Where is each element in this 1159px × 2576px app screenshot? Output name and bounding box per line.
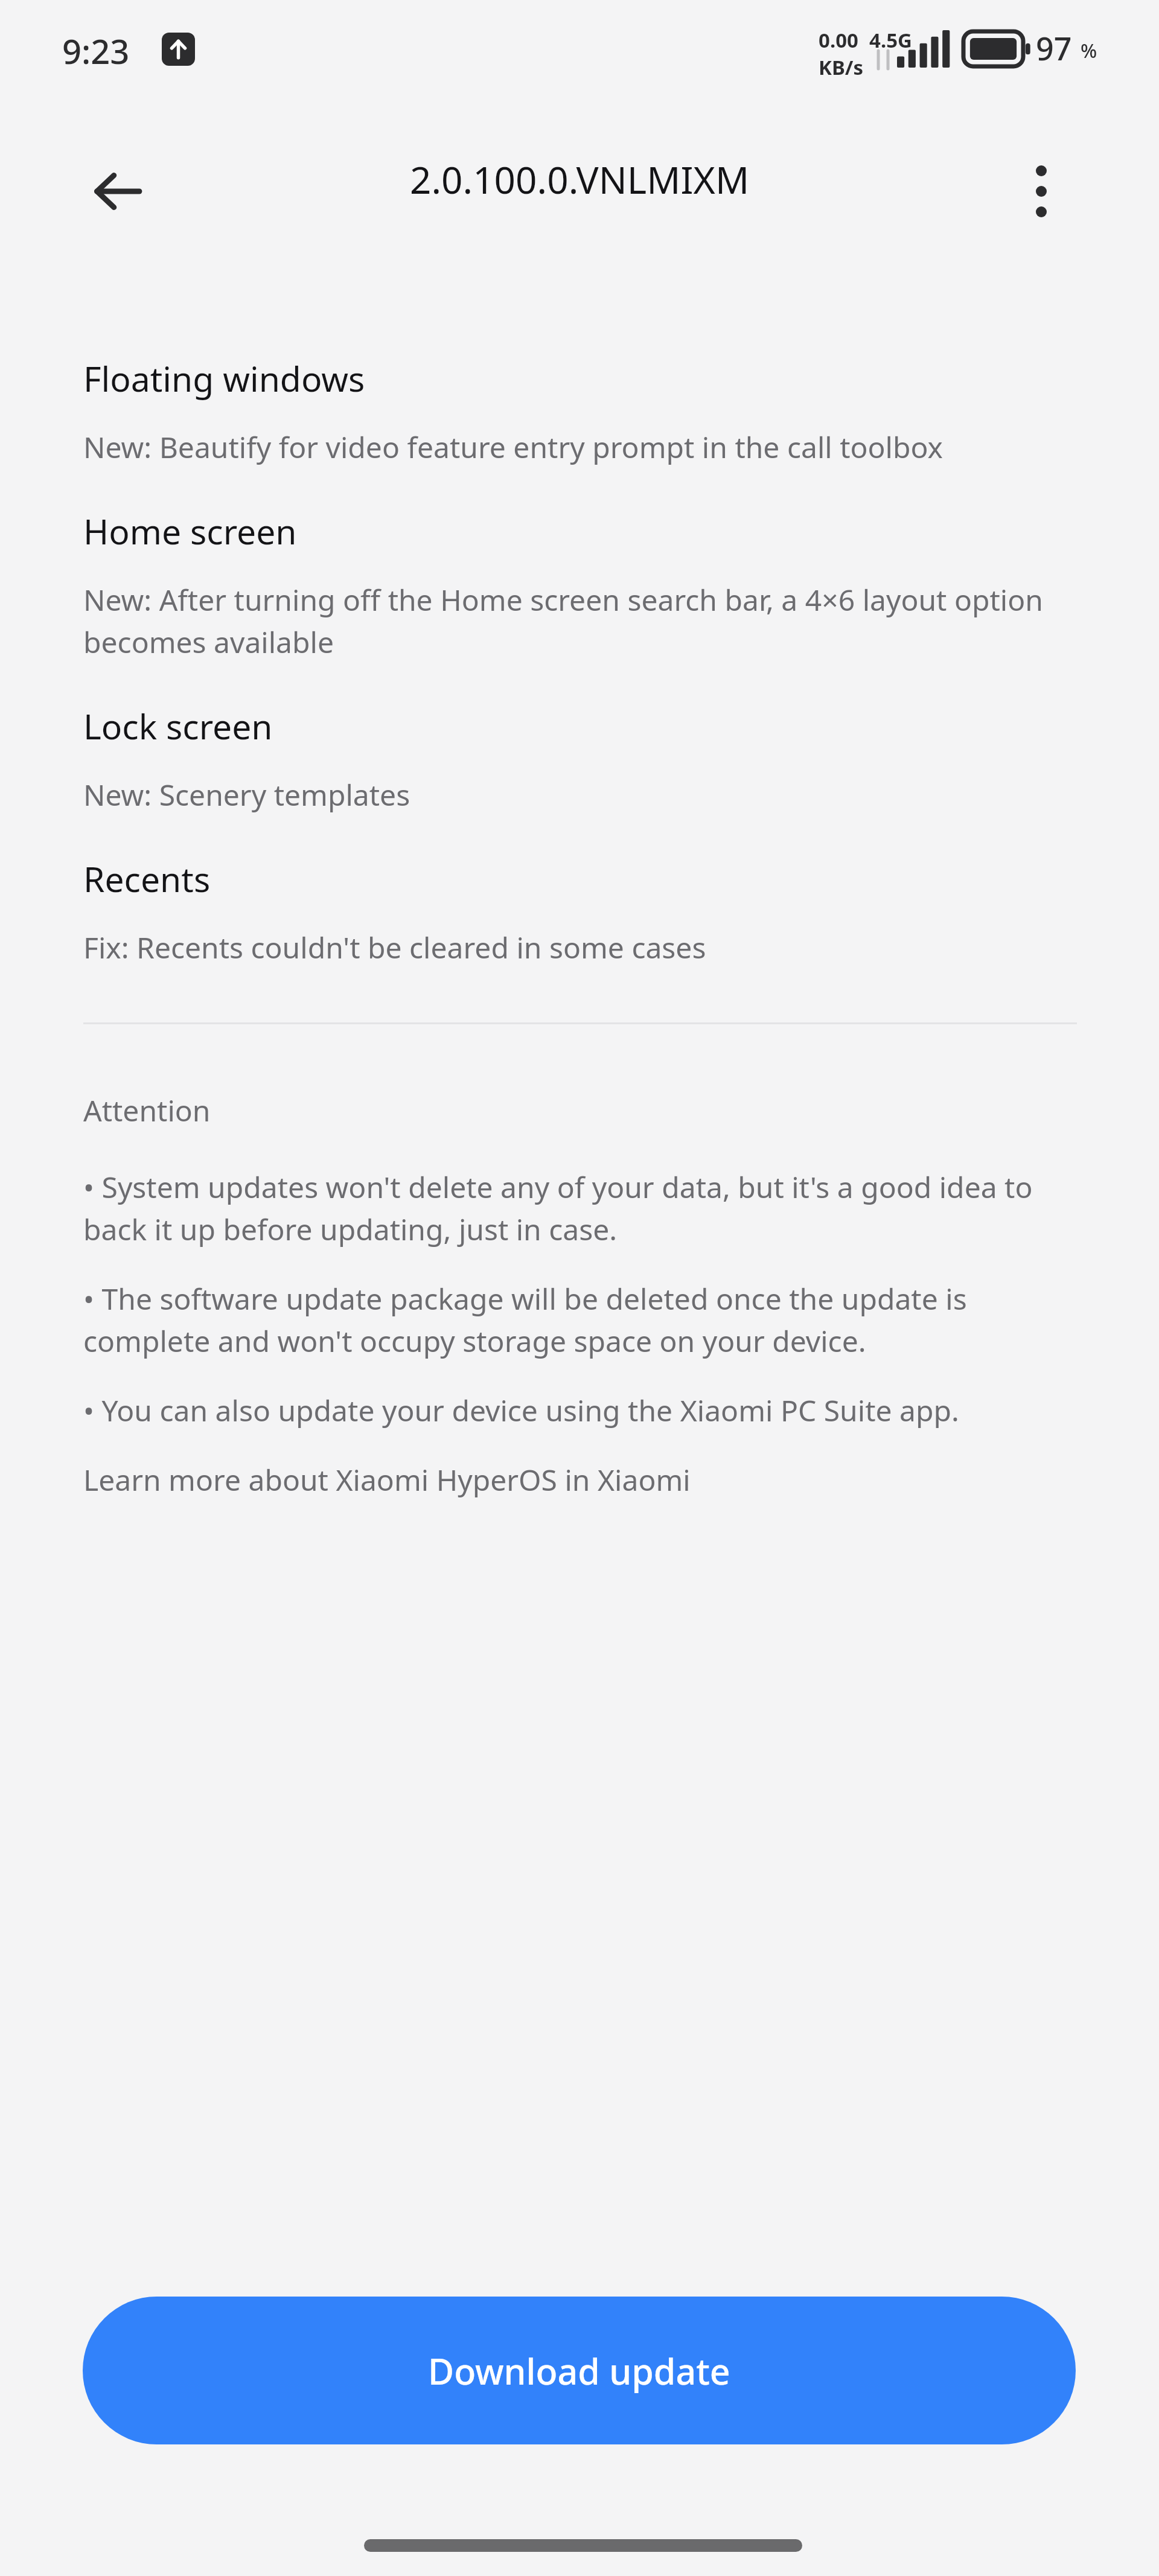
staticText: KB/s — [819, 54, 864, 81]
staticText: • System updates won't delete any of you… — [83, 1167, 1077, 1249]
staticText: Fix: Recents couldn't be cleared in some… — [83, 928, 706, 967]
staticText: 9:23 — [62, 28, 130, 74]
staticText: 0.00 — [819, 27, 858, 54]
staticText: Learn more about Xiaomi HyperOS in Xiaom… — [83, 1460, 691, 1499]
button[interactable]: Download update — [83, 2297, 1076, 2444]
staticText: Home screen — [83, 508, 297, 555]
staticText: • The software update package will be de… — [83, 1279, 1077, 1360]
staticText: Download update — [428, 2347, 730, 2395]
staticText: % — [1081, 37, 1097, 64]
button[interactable]: More options — [996, 146, 1087, 237]
staticText: Lock screen — [83, 703, 273, 750]
staticText: Recents — [83, 855, 211, 902]
staticText: 4.5G — [869, 27, 912, 54]
staticText: Floating windows — [83, 355, 365, 402]
staticText: New: Beautify for video feature entry pr… — [83, 427, 943, 467]
button[interactable]: Back — [72, 146, 163, 237]
staticText: New: Scenery templates — [83, 775, 410, 814]
staticText: • You can also update your device using … — [83, 1391, 959, 1430]
staticText: 97 — [1036, 27, 1072, 69]
staticText: Attention — [83, 1091, 211, 1130]
staticText: 2.0.100.0.VNLMIXM — [410, 154, 750, 205]
staticText: New: After turning off the Home screen s… — [83, 580, 1077, 662]
